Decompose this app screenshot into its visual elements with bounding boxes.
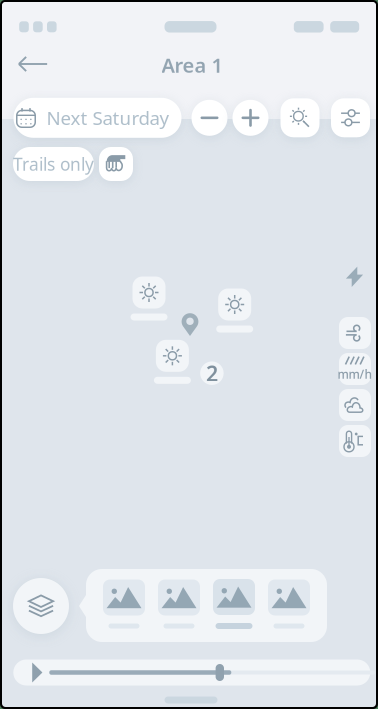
- button[interactable]: Map settings: [331, 98, 370, 137]
- button[interactable]: Pan map: [99, 147, 133, 181]
- button[interactable]: Satellite layer: [103, 579, 145, 628]
- button[interactable]: Hybrid layer: [213, 579, 255, 629]
- staticText: Area 1: [161, 52, 222, 78]
- button[interactable]: Cloud cover: [339, 389, 371, 421]
- button[interactable]: Trails only: [13, 147, 94, 181]
- button[interactable]: Zoom in: [232, 100, 268, 136]
- button[interactable]: Street layer: [268, 579, 310, 628]
- button[interactable]: Wind: [339, 317, 371, 349]
- button[interactable]: Temperature: [339, 425, 371, 457]
- staticText: Next Saturday: [46, 105, 169, 130]
- staticText: mm/h: [337, 366, 372, 382]
- button[interactable]: Sun finder: [280, 98, 319, 137]
- button[interactable]: Terrain layer: [158, 579, 200, 628]
- button[interactable]: Zoom out: [191, 100, 227, 136]
- button[interactable]: Back: [8, 45, 58, 83]
- staticText: Trails only: [13, 152, 94, 175]
- button[interactable]: Layers: [13, 578, 69, 634]
- button[interactable]: Next Saturday: [13, 98, 181, 138]
- button[interactable]: Precipitation: [339, 353, 371, 385]
- staticText: 2: [206, 359, 218, 387]
